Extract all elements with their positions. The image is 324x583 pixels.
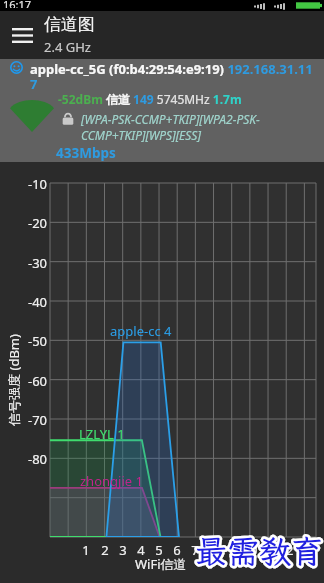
staticText: 2.4 GHz [44,38,91,56]
staticText: 3 [113,541,133,559]
staticText: -40 [20,293,47,311]
staticText: 9 [222,541,242,559]
staticText: zhongjie 1 [80,472,143,490]
staticText: [WPA-PSK-CCMP+TKIP][WPA2-PSK-CCMP+TKIP][… [81,111,319,144]
staticText: 12 [276,541,296,559]
staticText: -20 [20,214,47,232]
staticText: apple-cc 4 [110,322,172,340]
staticText: -52dBm 信道 149 5745MHz 1.7m [58,91,242,107]
staticText: apple-cc_5G (f0:b4:29:54:e9:19) 192.168.… [30,60,313,93]
staticText: WiFi信道 [135,555,187,573]
staticText: 11 [258,541,278,559]
staticText: 信道图 [44,14,95,35]
staticText: 6 [167,541,187,559]
staticText: 最需教育 [195,530,324,572]
staticText: 信号强度 (dBm) [5,330,23,430]
staticText: -70 [20,411,47,429]
staticText: -50 [20,332,47,350]
staticText: 16:17 [3,0,32,8]
staticText: 433Mbps [56,144,116,162]
staticText: -30 [20,254,47,272]
staticText: 8 [204,541,224,559]
staticText: -80 [20,450,47,468]
staticText: 4 [131,541,151,559]
staticText: 2 [95,541,115,559]
staticText: 7 [185,541,205,559]
button[interactable]: Menu [0,13,44,57]
staticText: 13 [294,541,314,559]
staticText: LZLYL 1 [79,425,125,443]
staticText: 10 [240,541,260,559]
staticText: -10 [20,175,47,193]
staticText: 最需教育 [195,530,324,572]
staticText: 5 [149,541,169,559]
staticText: 1 [76,541,96,559]
staticText: -60 [20,372,47,390]
